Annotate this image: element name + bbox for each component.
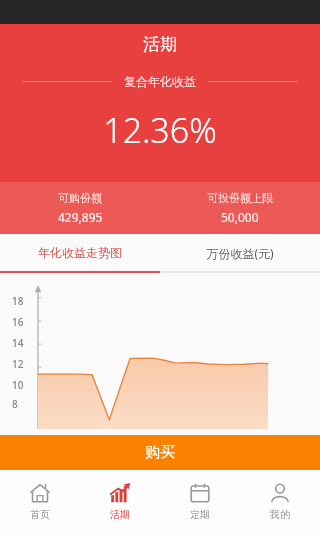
staticText: 定期 [190,508,210,521]
staticText: 首页 [30,508,50,521]
button[interactable]: 我的 [240,470,320,533]
staticText: 可购份额 [58,191,102,205]
button[interactable]: 万份收益(元) [160,234,320,271]
staticText: 活期 [110,508,130,521]
button[interactable]: 活期 [80,470,160,533]
staticText: 10 [12,378,24,392]
staticText: 8 [12,397,18,411]
staticText: 我的 [270,508,290,521]
button[interactable]: 购买 [0,435,320,470]
button[interactable]: 首页 [0,470,80,533]
staticText: 12 [12,357,24,371]
staticText: 12.36% [103,107,217,153]
staticText: 18 [12,294,24,308]
staticText: 万份收益(元) [206,245,274,261]
staticText: 可投份额上限 [207,191,273,205]
staticText: 活期 [143,34,177,55]
staticText: 购买 [145,443,175,462]
staticText: 16 [12,315,24,329]
staticText: 年化收益走势图 [38,245,122,260]
staticText: 50,000 [221,209,259,225]
staticText: 复合年化收益 [124,74,196,89]
button[interactable]: 定期 [160,470,240,533]
staticText: 14 [12,336,24,350]
staticText: 429,895 [58,209,103,225]
button[interactable]: 年化收益走势图 [0,234,160,271]
